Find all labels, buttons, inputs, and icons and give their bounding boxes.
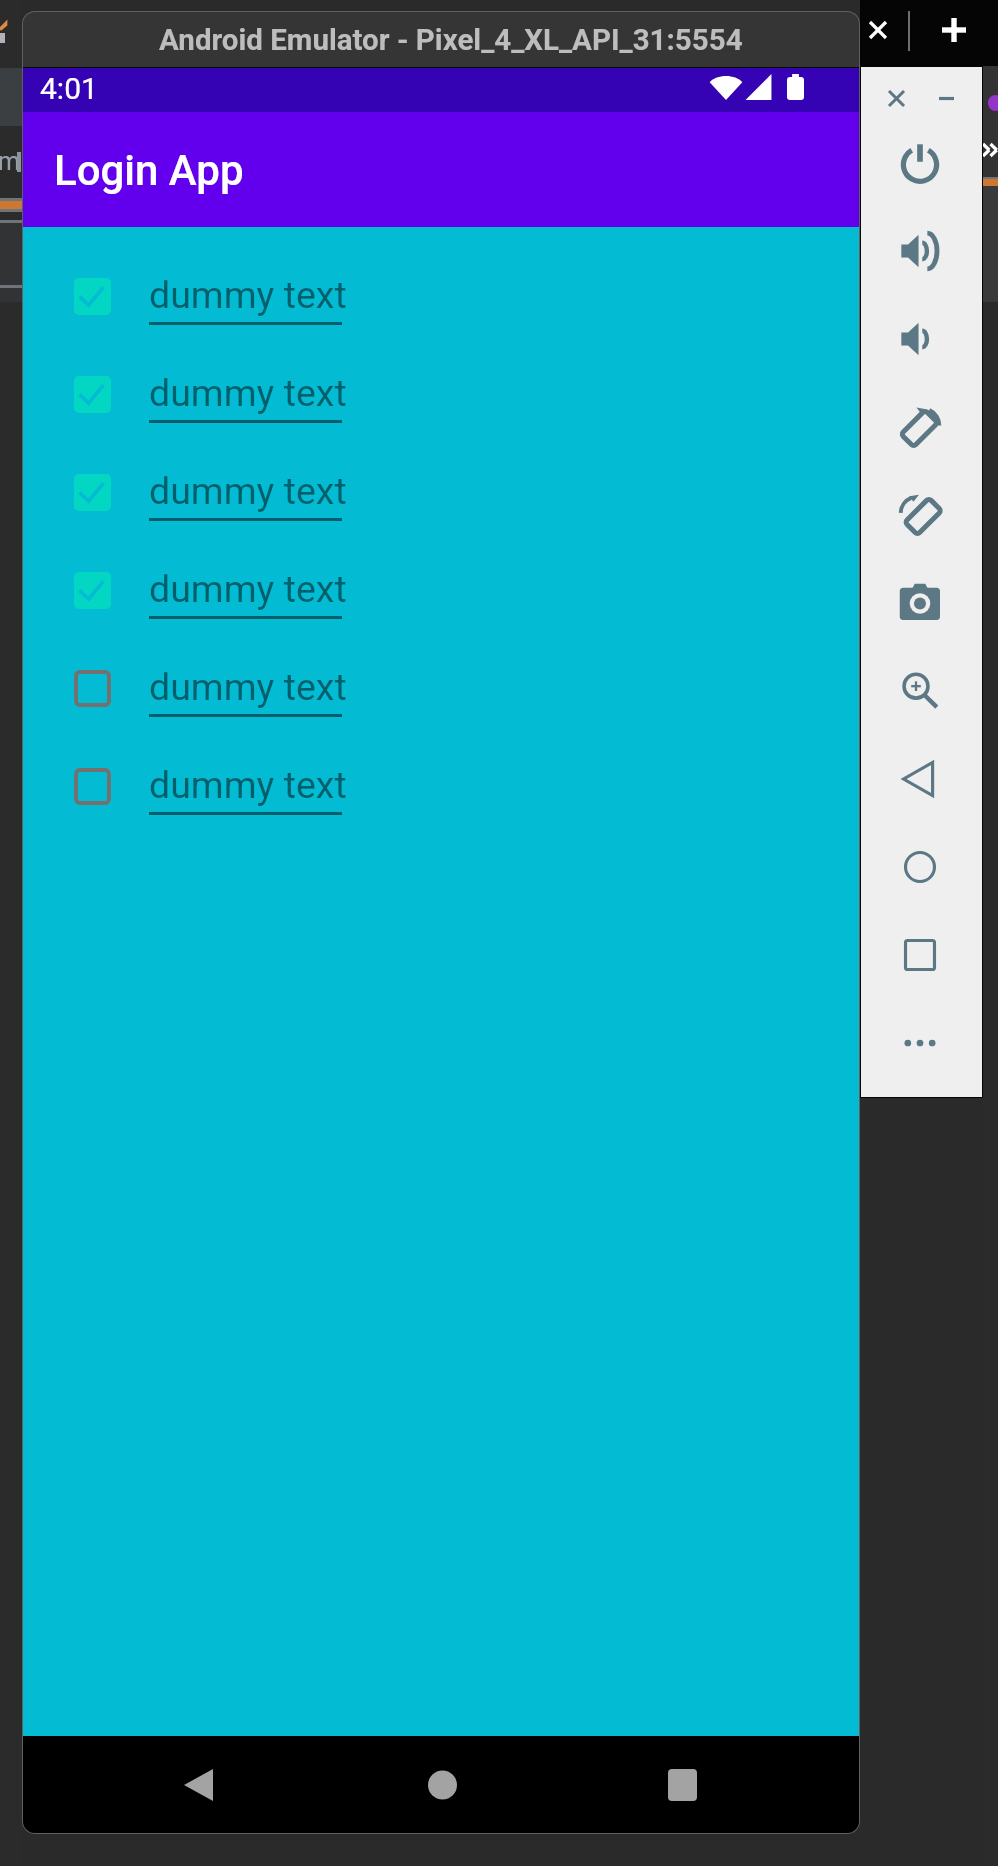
staticText: dummy text: [149, 273, 347, 317]
staticText: dummy text: [149, 665, 347, 709]
staticText: dummy text: [149, 469, 347, 513]
button[interactable]: Checked: [74, 572, 111, 609]
button[interactable]: Checked: [23, 545, 859, 643]
button[interactable]: Home: [397, 1736, 487, 1833]
button[interactable]: Take screenshot: [890, 573, 950, 633]
button[interactable]: Close toolbar: [875, 77, 917, 119]
button[interactable]: Rotate right: [890, 485, 950, 545]
button[interactable]: Unchecked: [23, 741, 859, 839]
button[interactable]: Home: [890, 837, 950, 897]
button[interactable]: Power: [890, 133, 950, 193]
button[interactable]: Close tab: [858, 10, 898, 50]
button[interactable]: Unchecked: [23, 643, 859, 741]
button[interactable]: Volume up: [890, 221, 950, 281]
button[interactable]: New tab: [934, 10, 974, 50]
button[interactable]: Checked: [74, 278, 111, 315]
staticText: Android Emulator - Pixel_4_XL_API_31:555…: [159, 23, 743, 58]
staticText: Login App: [54, 146, 244, 195]
button[interactable]: Checked: [74, 376, 111, 413]
button[interactable]: Zoom: [890, 661, 950, 721]
button[interactable]: Unchecked: [74, 670, 111, 707]
button[interactable]: Volume down: [890, 309, 950, 369]
staticText: dummy text: [149, 567, 347, 611]
button[interactable]: Back: [153, 1736, 243, 1833]
button[interactable]: Recents: [637, 1736, 727, 1833]
button[interactable]: Back: [890, 749, 950, 809]
button[interactable]: Checked: [23, 349, 859, 447]
button[interactable]: Rotate left: [890, 397, 950, 457]
staticText: dummy text: [149, 763, 347, 807]
button[interactable]: Unchecked: [74, 768, 111, 805]
button[interactable]: Checked: [23, 251, 859, 349]
staticText: dummy text: [149, 371, 347, 415]
button[interactable]: Overview: [890, 925, 950, 985]
button[interactable]: More: [890, 1013, 950, 1073]
button[interactable]: Checked: [74, 474, 111, 511]
staticText: 4:01: [40, 71, 98, 106]
staticText: m: [0, 147, 20, 176]
button[interactable]: Minimize toolbar: [925, 77, 967, 119]
button[interactable]: Checked: [23, 447, 859, 545]
